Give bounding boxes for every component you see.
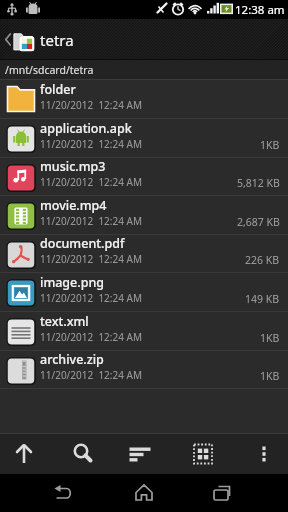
staticText: 149 KB — [245, 292, 280, 306]
staticText: 11/20/2012 12:24 AM — [40, 175, 143, 189]
staticText: 11/20/2012 12:24 AM — [40, 214, 143, 228]
button[interactable]: tetra — [0, 19, 288, 60]
button[interactable]: folder — [0, 79, 288, 118]
staticText: application.apk — [40, 120, 132, 137]
button[interactable]: Up — [0, 434, 48, 474]
button[interactable]: More options — [240, 434, 288, 474]
staticText: 12:38 am — [235, 2, 285, 18]
staticText: folder — [40, 81, 76, 98]
staticText: 11/20/2012 12:24 AM — [40, 252, 143, 266]
button[interactable]: movie.mp4 — [0, 195, 288, 234]
button[interactable]: music.mp3 — [0, 157, 288, 195]
staticText: 11/20/2012 12:24 AM — [40, 98, 143, 112]
staticText: 11/20/2012 12:24 AM — [40, 137, 143, 151]
button[interactable]: Sort — [117, 434, 165, 474]
staticText: 11/20/2012 12:24 AM — [40, 330, 143, 344]
staticText: 226 KB — [245, 253, 280, 267]
button[interactable]: Home — [120, 474, 168, 512]
button[interactable]: Search — [59, 434, 107, 474]
button[interactable]: Recent apps — [198, 474, 246, 512]
button[interactable]: text.xml — [0, 311, 288, 350]
staticText: 1KB — [260, 369, 280, 383]
staticText: text.xml — [40, 313, 89, 330]
staticText: 2,687 KB — [237, 215, 280, 229]
button[interactable]: Grid view — [179, 434, 227, 474]
button[interactable]: image.png — [0, 272, 288, 311]
staticText: image.png — [40, 274, 105, 291]
staticText: archive.zip — [40, 351, 104, 368]
button[interactable]: archive.zip — [0, 350, 288, 388]
staticText: /mnt/sdcard/tetra — [5, 63, 94, 77]
staticText: document.pdf — [40, 235, 125, 252]
staticText: 1KB — [260, 138, 280, 152]
staticText: 11/20/2012 12:24 AM — [40, 368, 143, 382]
staticText: movie.mp4 — [40, 197, 107, 214]
staticText: music.mp3 — [40, 158, 106, 175]
button[interactable]: document.pdf — [0, 234, 288, 272]
staticText: 1KB — [260, 331, 280, 345]
staticText: 11/20/2012 12:24 AM — [40, 291, 143, 305]
staticText: 5,812 KB — [237, 176, 280, 190]
button[interactable]: Back — [39, 474, 87, 512]
button[interactable]: application.apk — [0, 118, 288, 157]
staticText: tetra — [40, 30, 74, 50]
